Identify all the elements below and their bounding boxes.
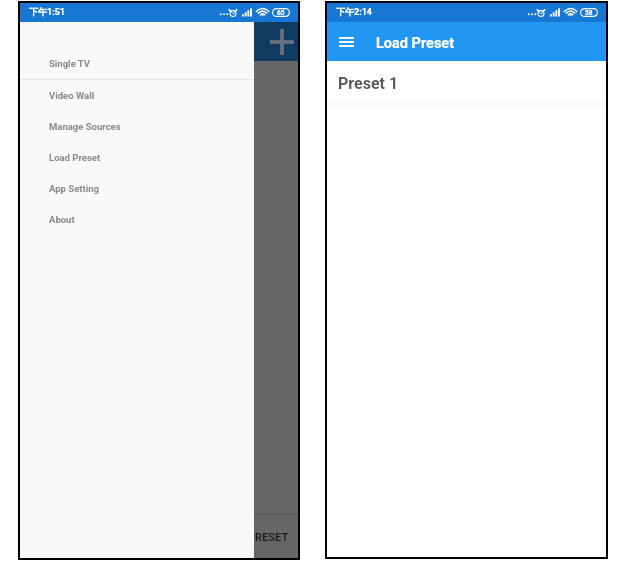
staticText: App Setting xyxy=(49,183,99,194)
button[interactable]: Video Wall xyxy=(20,80,254,111)
button[interactable]: Preset 1 xyxy=(327,61,606,102)
staticText: Video Wall xyxy=(49,90,95,101)
button[interactable]: Load Preset xyxy=(20,142,254,173)
button[interactable]: Open navigation drawer xyxy=(332,28,360,56)
button[interactable]: Single TV xyxy=(20,48,254,79)
staticText: 65 xyxy=(277,9,285,17)
staticText: About xyxy=(49,214,75,225)
staticText: 58 xyxy=(585,9,593,17)
button[interactable]: Add xyxy=(267,27,297,57)
button[interactable]: PRESET xyxy=(20,515,298,558)
button[interactable]: App Setting xyxy=(20,173,254,204)
staticText: Manage Sources xyxy=(49,121,121,132)
staticText: Preset 1 xyxy=(338,74,399,93)
button[interactable]: Manage Sources xyxy=(20,111,254,142)
staticText: 下午2:14 xyxy=(336,6,373,17)
staticText: Single TV xyxy=(49,58,91,69)
staticText: PRESET xyxy=(248,531,289,544)
staticText: Load Preset xyxy=(376,35,455,52)
staticText: 下午1:51 xyxy=(29,6,66,17)
button[interactable]: About xyxy=(20,204,254,235)
staticText: Load Preset xyxy=(49,152,101,163)
